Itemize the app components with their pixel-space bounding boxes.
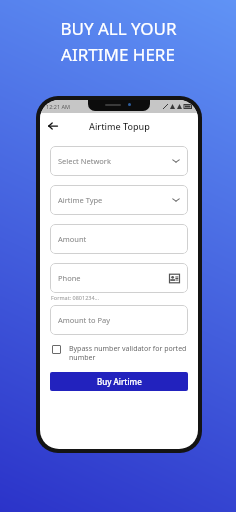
staticText: Bypass number validator for ported numbe… [69, 344, 188, 362]
staticText: Buy Airtime [97, 376, 142, 387]
staticText: AIRTIME HERE [61, 43, 175, 66]
staticText: Airtime Type [58, 195, 103, 205]
staticText: BUY ALL YOUR [60, 17, 177, 40]
staticText: Amount [58, 234, 87, 244]
staticText: Select Network [58, 156, 111, 166]
button[interactable]: Buy Airtime [50, 372, 188, 391]
staticText: Amount to Pay [58, 315, 111, 325]
other: Pick contact [169, 273, 180, 284]
button[interactable]: Bypass number validator for ported numbe… [50, 344, 188, 362]
button[interactable]: Back [45, 118, 61, 134]
staticText: Airtime Topup [89, 120, 150, 132]
staticText: 12:21 AM [46, 103, 70, 110]
button[interactable]: Amount [50, 224, 188, 254]
staticText: Format: 0801234... [51, 294, 100, 301]
button[interactable]: Select Network [50, 146, 188, 176]
staticText: Phone [58, 273, 81, 283]
button[interactable]: Airtime Type [50, 185, 188, 215]
button[interactable]: Amount to Pay [50, 305, 188, 335]
button[interactable]: Phone [50, 263, 188, 293]
